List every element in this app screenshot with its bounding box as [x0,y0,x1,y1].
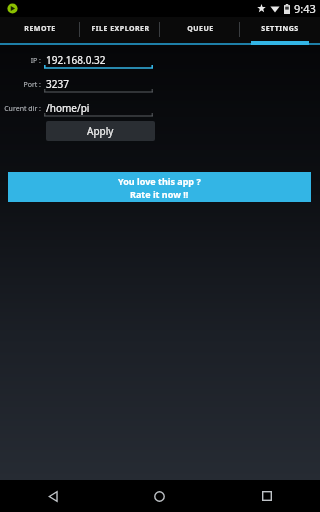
button[interactable]: Home [106,480,213,512]
button[interactable]: /home/pi [44,100,153,117]
staticText: QUEUE [187,24,214,34]
button[interactable]: Recent apps [213,480,320,512]
staticText: Rate it now !! [130,188,189,200]
button[interactable]: You love this app ? [8,172,311,202]
staticText: IP : [30,56,41,66]
staticText: /home/pi [46,101,90,115]
staticText: 192.168.0.32 [46,53,106,67]
button[interactable]: SETTINGS [240,17,320,41]
button[interactable]: FILE EXPLORER [80,17,160,41]
staticText: Curent dir : [4,104,41,114]
button[interactable]: 3237 [44,76,153,93]
staticText: FILE EXPLORER [91,24,150,34]
staticText: SETTINGS [261,24,299,34]
staticText: Port : [23,80,41,90]
button[interactable]: QUEUE [160,17,240,41]
button[interactable]: REMOTE [0,17,80,41]
staticText: You love this app ? [118,175,201,187]
staticText: 9:43 [294,1,316,16]
staticText: Apply [87,124,114,138]
button[interactable]: Apply [46,121,155,141]
staticText: 3237 [46,77,69,91]
button[interactable]: 192.168.0.32 [44,52,153,69]
button[interactable]: Back [0,480,106,512]
staticText: REMOTE [24,24,56,34]
